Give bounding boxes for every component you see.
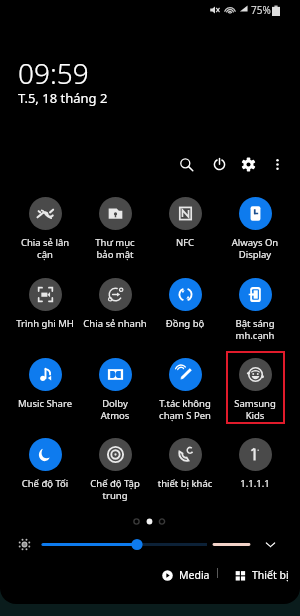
button[interactable]: thiết bị khác [150,438,220,490]
button[interactable]: Dolby Atmos [80,358,150,422]
button[interactable] [36,534,260,555]
button[interactable]: Search [172,150,200,178]
staticText: 1.1.1.1 [220,477,290,490]
button[interactable]: 1.1.1.1 [220,438,290,490]
button[interactable]: Music Share [10,358,80,410]
staticText: Trình ghi MH [10,317,80,330]
button[interactable]: Chia sẻ nhanh [80,278,150,330]
staticText: Đồng bộ [150,317,220,330]
button[interactable]: Chế độ Tập trung [80,438,150,502]
button[interactable]: Samsung Kids [220,358,290,422]
button[interactable]: NFC [150,197,220,249]
button[interactable]: Bật sáng mh.cạnh [220,278,290,342]
button[interactable]: Media [159,565,213,585]
staticText: Thiết bị [252,568,289,582]
staticText: Dolby Atmos [80,397,150,422]
staticText: Thư mục bảo mật [80,236,150,261]
staticText: Music Share [10,397,80,410]
staticText: T.tác không chạm S Pen [150,397,220,422]
staticText: NFC [150,236,220,249]
staticText: T.5, 18 tháng 2 [18,89,108,107]
button[interactable]: Trình ghi MH [10,278,80,330]
staticText: Chế độ Tập trung [80,477,150,502]
button[interactable]: Expand [260,534,281,555]
button[interactable]: Settings [234,150,262,178]
button[interactable]: Chia sẻ lân cận [10,197,80,261]
button[interactable]: Đồng bộ [150,278,220,330]
button[interactable]: Thiết bị [232,565,292,585]
staticText: thiết bị khác [150,477,220,490]
staticText: Media [179,568,210,582]
button[interactable]: More options [263,150,291,178]
button[interactable]: Brightness [14,534,35,555]
button[interactable]: Thư mục bảo mật [80,197,150,261]
staticText: Samsung Kids [220,397,290,422]
staticText: 09:59 [18,54,89,92]
staticText: Chế độ Tối [10,477,80,490]
button[interactable]: Chế độ Tối [10,438,80,490]
staticText: Chia sẻ lân cận [10,236,80,261]
staticText: Chia sẻ nhanh [80,317,150,330]
staticText: 75% [251,3,271,17]
button[interactable]: T.tác không chạm S Pen [150,358,220,422]
staticText: Always On Display [220,236,290,261]
button[interactable]: Always On Display [220,197,290,261]
staticText: Bật sáng mh.cạnh [220,317,290,342]
button[interactable]: Power [205,150,233,178]
